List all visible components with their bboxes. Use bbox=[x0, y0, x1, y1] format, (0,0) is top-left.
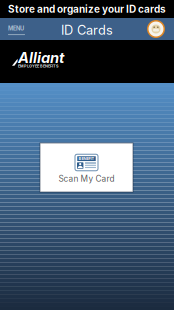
staticText: BENEFIT bbox=[78, 156, 94, 161]
staticText: Store and organize your ID cards bbox=[8, 3, 166, 15]
staticText: MENU bbox=[8, 25, 24, 32]
staticText: Alliant bbox=[18, 49, 64, 66]
staticText: EMPLOYEE BENEFITS bbox=[18, 64, 59, 68]
button[interactable]: MENU bbox=[0, 18, 44, 40]
button[interactable]: Account bbox=[147, 18, 174, 40]
staticText: ID Cards bbox=[61, 22, 113, 38]
button[interactable]: BENEFIT bbox=[40, 143, 133, 192]
staticText: Scan My Card bbox=[58, 174, 114, 184]
